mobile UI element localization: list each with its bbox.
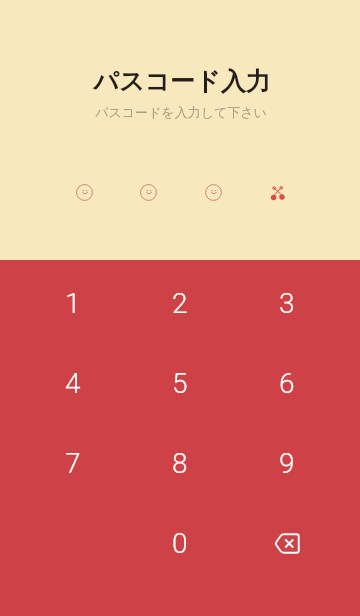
- staticText: 8: [172, 447, 188, 480]
- button[interactable]: Backspace: [233, 503, 340, 583]
- staticText: 1: [65, 287, 81, 320]
- button[interactable]: 6: [233, 343, 340, 423]
- button[interactable]: 2: [126, 263, 233, 343]
- button[interactable]: 8: [126, 423, 233, 503]
- button[interactable]: 0: [126, 503, 233, 583]
- button[interactable]: 9: [233, 423, 340, 503]
- staticText: パスコード入力: [93, 66, 271, 97]
- button[interactable]: 4: [20, 343, 126, 423]
- staticText: 0: [172, 527, 188, 560]
- staticText: パスコードを入力して下さい: [95, 104, 267, 120]
- button[interactable]: 5: [126, 343, 233, 423]
- staticText: 9: [279, 447, 295, 480]
- button[interactable]: 3: [233, 263, 340, 343]
- staticText: 2: [172, 287, 188, 320]
- staticText: 6: [279, 367, 295, 400]
- button[interactable]: 1: [20, 263, 126, 343]
- staticText: 7: [65, 447, 81, 480]
- staticText: 3: [279, 287, 295, 320]
- staticText: 5: [172, 367, 188, 400]
- staticText: 4: [65, 367, 81, 400]
- button[interactable]: 7: [20, 423, 126, 503]
